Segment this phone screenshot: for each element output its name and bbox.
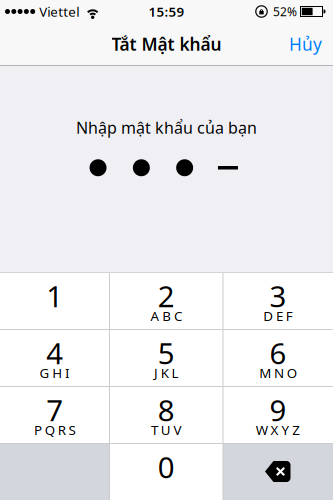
button[interactable]: 7 <box>0 386 109 443</box>
staticText: 8 <box>158 390 175 429</box>
staticText: DEF <box>263 307 293 325</box>
staticText: 9 <box>269 390 286 429</box>
staticText: Hủy <box>289 32 322 55</box>
button[interactable]: 8 <box>109 386 223 443</box>
staticText: 15:59 <box>148 3 184 20</box>
button[interactable]: 3 <box>223 272 333 329</box>
staticText: MNO <box>259 364 297 382</box>
button[interactable]: 2 <box>109 272 223 329</box>
button[interactable]: 0 <box>109 443 223 500</box>
staticText: ABC <box>150 307 182 325</box>
staticText: 7 <box>46 390 63 429</box>
staticText: Tắt Mật khẩu <box>111 32 221 55</box>
staticText: 2 <box>158 276 175 315</box>
button[interactable]: 9 <box>223 386 333 443</box>
staticText: 4 <box>46 333 63 372</box>
staticText: Nhập mật khẩu của bạn <box>76 117 257 138</box>
staticText: 52% <box>273 3 297 19</box>
staticText: 6 <box>269 333 286 372</box>
button[interactable]: 6 <box>223 329 333 386</box>
staticText: Viettel <box>39 3 79 20</box>
button[interactable]: 4 <box>0 329 109 386</box>
button[interactable]: 1 <box>0 272 109 329</box>
staticText: GHI <box>39 364 70 382</box>
staticText: 0 <box>158 447 175 486</box>
button[interactable]: 5 <box>109 329 223 386</box>
staticText: WXYZ <box>256 421 300 439</box>
button[interactable]: Hủy <box>289 32 333 55</box>
button[interactable]: Delete <box>223 443 333 500</box>
staticText: TUV <box>151 421 182 439</box>
staticText: 5 <box>158 333 175 372</box>
staticText: 3 <box>269 276 286 315</box>
staticText: JKL <box>154 364 179 382</box>
staticText: 1 <box>46 276 63 315</box>
staticText: PQRS <box>34 421 75 439</box>
